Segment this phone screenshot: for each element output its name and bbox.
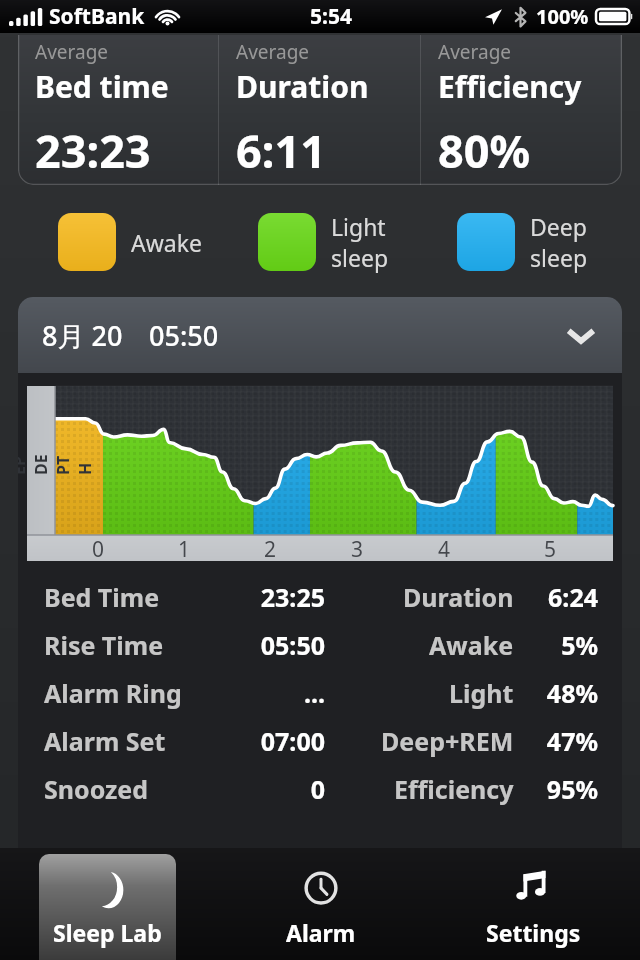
staticText: 2	[264, 535, 277, 561]
staticText: Light	[449, 676, 514, 710]
button[interactable]: Bed Time	[18, 573, 622, 621]
staticText: sleep	[530, 242, 588, 273]
staticText: Alarm	[286, 917, 356, 948]
staticText: Rise Time	[44, 628, 164, 662]
staticText: 0	[310, 772, 325, 806]
staticText: Snoozed	[44, 772, 149, 806]
staticText: 23:25	[260, 580, 325, 614]
button[interactable]: Average	[219, 35, 420, 185]
button[interactable]: Alarm Set	[18, 717, 622, 765]
button[interactable]: Alarm Ring	[18, 669, 622, 717]
staticText: Deep+REM	[381, 724, 514, 758]
staticText: 8月 20	[42, 317, 123, 354]
staticText: 100%	[536, 3, 589, 30]
staticText: Bed time	[35, 66, 169, 107]
staticText: Deep	[530, 211, 587, 242]
button[interactable]: Sleep Lab	[39, 854, 176, 960]
staticText: 07:00	[260, 724, 325, 758]
staticText: Efficiency	[394, 772, 514, 806]
staticText: Alarm Ring	[44, 676, 182, 710]
staticText: Sleep Lab	[53, 917, 162, 948]
staticText: Duration	[236, 66, 369, 107]
staticText: 3	[351, 535, 364, 561]
button[interactable]: Alarm	[252, 854, 389, 960]
button[interactable]: 8月 20	[18, 297, 622, 373]
staticText: 23:23	[35, 120, 151, 181]
staticText: Awake	[429, 628, 514, 662]
button[interactable]: Collapse	[564, 318, 598, 352]
staticText: Settings	[486, 917, 581, 948]
staticText: sleep	[331, 242, 389, 273]
staticText: Duration	[403, 580, 514, 614]
staticText: 5	[544, 535, 557, 561]
staticText: 1	[178, 535, 191, 561]
staticText: 48%	[546, 676, 598, 710]
staticText: SLEEP DEPTH	[18, 447, 96, 475]
staticText: Light	[331, 211, 386, 242]
staticText: 0	[92, 535, 105, 561]
staticText: Awake	[131, 227, 202, 258]
button[interactable]: Snoozed	[18, 765, 622, 813]
staticText: 05:50	[149, 317, 219, 354]
staticText: 6:24	[548, 580, 598, 614]
staticText: Efficiency	[438, 66, 582, 107]
staticText: 80%	[438, 120, 531, 181]
staticText: 05:50	[260, 628, 325, 662]
button[interactable]: Average	[18, 35, 218, 185]
staticText: 6:11	[236, 120, 326, 181]
staticText: Alarm Set	[44, 724, 166, 758]
button[interactable]: Average	[421, 35, 622, 185]
staticText: Average	[35, 39, 109, 65]
staticText: Average	[236, 39, 310, 65]
staticText: Average	[438, 39, 512, 65]
staticText: 95%	[546, 772, 598, 806]
button[interactable]: Rise Time	[18, 621, 622, 669]
staticText: 5%	[561, 628, 598, 662]
staticText: ...	[303, 676, 325, 710]
staticText: 47%	[546, 724, 598, 758]
button[interactable]: Settings	[465, 854, 602, 960]
staticText: 4	[438, 535, 451, 561]
staticText: 5:54	[310, 2, 352, 31]
staticText: SoftBank	[49, 2, 145, 31]
staticText: Bed Time	[44, 580, 160, 614]
